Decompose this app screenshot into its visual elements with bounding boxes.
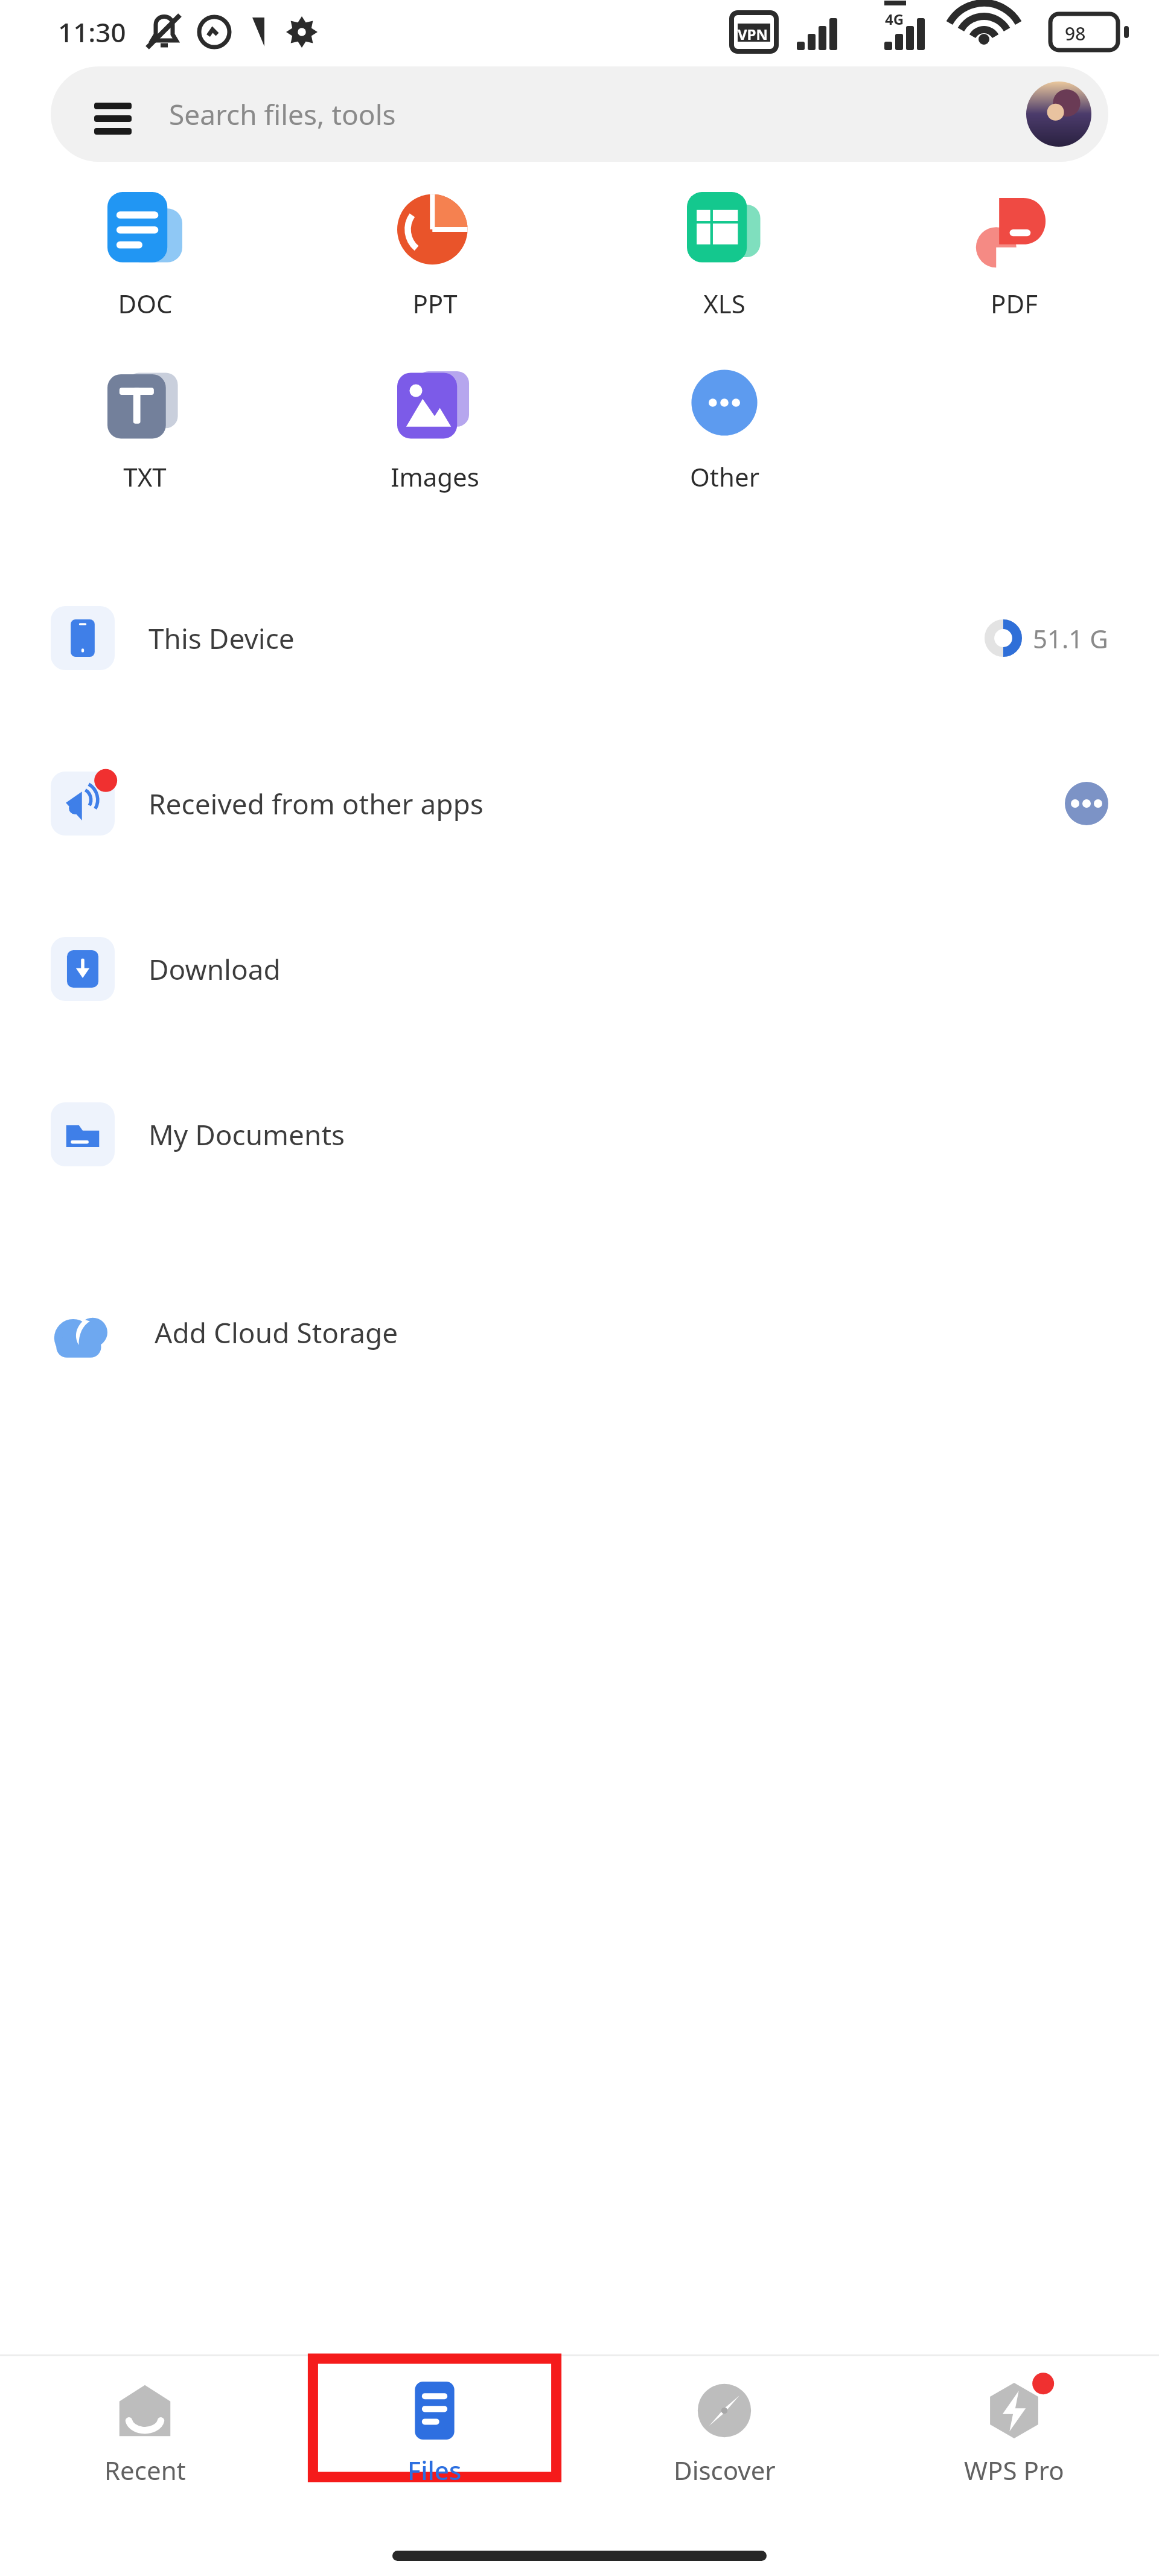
button[interactable]: DOC (0, 184, 290, 329)
staticText: Add Cloud Storage (155, 1314, 398, 1352)
button[interactable]: Add Cloud Storage (0, 1250, 1159, 1415)
staticText: TXT (123, 459, 167, 494)
staticText: This Device (148, 619, 295, 657)
button[interactable]: Recent (0, 2356, 290, 2487)
staticText: Received from other apps (148, 785, 484, 823)
button[interactable]: Search files, tools (51, 66, 1108, 162)
staticText: 51.1 G (1033, 621, 1108, 656)
staticText: PPT (412, 286, 458, 321)
button[interactable]: More options (1065, 782, 1108, 825)
button[interactable]: WPS Pro (869, 2356, 1159, 2487)
staticText: My Documents (148, 1116, 345, 1154)
staticText: Images (391, 459, 479, 494)
button[interactable]: Files (290, 2356, 579, 2535)
staticText: 4G (885, 9, 904, 29)
staticText: Recent (104, 2453, 186, 2487)
button[interactable]: My Documents (0, 1052, 1159, 1217)
staticText: Files (407, 2453, 462, 2487)
button[interactable]: Account (1026, 81, 1091, 147)
button[interactable]: PDF (869, 184, 1159, 329)
staticText: XLS (703, 286, 746, 321)
button[interactable]: This Device (0, 555, 1159, 721)
button[interactable]: Images (290, 357, 579, 502)
staticText: Download (148, 950, 281, 988)
staticText: DOC (118, 286, 173, 321)
button[interactable]: TXT (0, 357, 290, 502)
button[interactable]: PPT (290, 184, 579, 329)
button[interactable]: Received from other apps (0, 721, 1159, 886)
staticText: Discover (674, 2453, 776, 2487)
button[interactable]: Download (0, 886, 1159, 1052)
button[interactable]: XLS (579, 184, 869, 329)
button[interactable]: Other (579, 357, 869, 502)
staticText: 98 (1065, 21, 1086, 46)
button[interactable]: Discover (579, 2356, 869, 2487)
staticText: VPN (738, 24, 768, 44)
staticText: PDF (991, 286, 1038, 321)
staticText: WPS Pro (964, 2453, 1064, 2487)
staticText: Search files, tools (169, 95, 396, 133)
staticText: 11:30 (58, 14, 126, 50)
staticText: Other (690, 459, 759, 494)
